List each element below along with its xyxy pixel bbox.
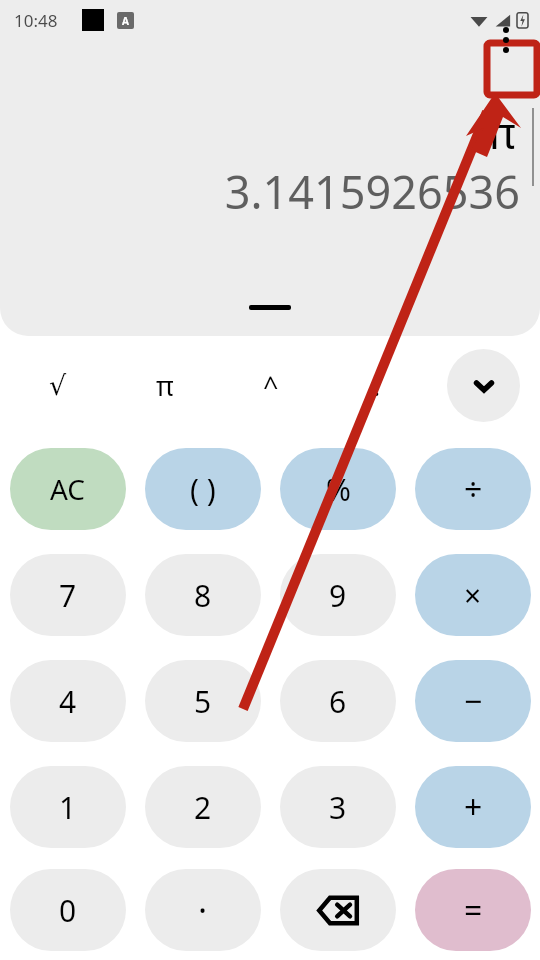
- staticText: !: [373, 367, 381, 404]
- button[interactable]: =: [415, 869, 531, 951]
- staticText: π: [487, 102, 516, 162]
- staticText: 3.1415926536: [224, 161, 520, 222]
- staticText: √: [49, 370, 67, 401]
- button[interactable]: 3: [280, 766, 396, 848]
- staticText: +: [464, 785, 483, 829]
- button[interactable]: 5: [145, 660, 261, 742]
- staticText: AC: [50, 470, 86, 508]
- button[interactable]: 9: [280, 554, 396, 636]
- button[interactable]: !: [324, 342, 430, 428]
- button[interactable]: AC: [10, 448, 126, 530]
- staticText: 3: [329, 787, 347, 828]
- staticText: ^: [263, 367, 279, 404]
- button[interactable]: ( ): [145, 448, 261, 530]
- button[interactable]: %: [280, 448, 396, 530]
- button[interactable]: Expand history: [249, 305, 291, 310]
- button[interactable]: 8: [145, 554, 261, 636]
- button[interactable]: ·: [145, 869, 261, 951]
- staticText: ( ): [190, 469, 216, 510]
- button[interactable]: ÷: [415, 448, 531, 530]
- staticText: 10:48: [14, 9, 58, 32]
- staticText: ÷: [464, 467, 483, 511]
- staticText: 0: [59, 890, 77, 931]
- staticText: −: [464, 679, 483, 723]
- button[interactable]: ×: [415, 554, 531, 636]
- staticText: 9: [329, 575, 347, 616]
- staticText: 1: [59, 787, 77, 828]
- staticText: 8: [194, 575, 212, 616]
- staticText: 5: [194, 681, 212, 722]
- staticText: 2: [194, 787, 212, 828]
- button[interactable]: 1: [10, 766, 126, 848]
- button[interactable]: π: [111, 342, 218, 428]
- staticText: =: [464, 888, 483, 932]
- button[interactable]: −: [415, 660, 531, 742]
- staticText: 7: [59, 575, 77, 616]
- button[interactable]: 0: [10, 869, 126, 951]
- staticText: ·: [198, 887, 208, 933]
- button[interactable]: +: [415, 766, 531, 848]
- staticText: 4: [59, 681, 77, 722]
- button[interactable]: Show more functions: [447, 349, 520, 422]
- button[interactable]: More options: [482, 16, 530, 64]
- button[interactable]: 4: [10, 660, 126, 742]
- button[interactable]: 2: [145, 766, 261, 848]
- staticText: ×: [464, 575, 482, 616]
- staticText: A: [122, 14, 129, 28]
- staticText: 6: [329, 681, 347, 722]
- staticText: π: [156, 367, 174, 404]
- button[interactable]: Delete: [280, 869, 396, 951]
- button[interactable]: √: [4, 342, 111, 428]
- staticText: %: [326, 469, 351, 510]
- button[interactable]: 6: [280, 660, 396, 742]
- button[interactable]: 7: [10, 554, 126, 636]
- button[interactable]: ^: [218, 342, 324, 428]
